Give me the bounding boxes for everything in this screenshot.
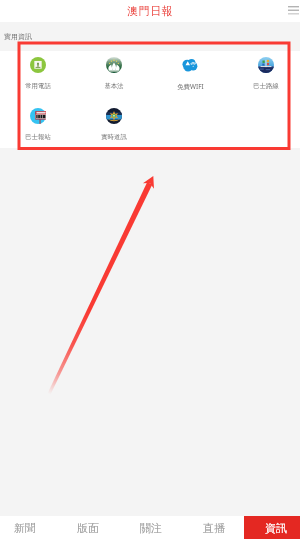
button[interactable]: Menu [284, 4, 299, 18]
button[interactable]: 實時道訊 [76, 103, 152, 147]
staticText: 版面 [77, 521, 99, 535]
button[interactable]: 新聞 [0, 516, 56, 539]
staticText: 新聞 [14, 521, 36, 535]
staticText: 基本法 [104, 82, 124, 90]
staticText: 免費WIFI [177, 82, 204, 91]
button[interactable]: 常用電話 [0, 52, 76, 96]
button[interactable]: 直播 [182, 516, 245, 539]
staticText: 關注 [140, 521, 162, 535]
staticText: 實用資訊 [4, 32, 32, 41]
staticText: 資訊 [265, 521, 287, 535]
button[interactable]: 免費WIFI [152, 52, 228, 96]
staticText: 常用電話 [25, 82, 51, 90]
staticText: 巴士路線 [253, 82, 279, 90]
button[interactable]: 關注 [119, 516, 182, 539]
button[interactable]: 巴士報站 [0, 103, 76, 147]
button[interactable]: 基本法 [76, 52, 152, 96]
staticText: 澳門日報 [127, 4, 174, 18]
staticText: 巴士報站 [25, 133, 51, 141]
staticText: 實時道訊 [101, 133, 127, 141]
button[interactable]: 版面 [56, 516, 119, 539]
button[interactable]: 巴士路線 [228, 52, 300, 96]
button[interactable]: 資訊 [244, 516, 300, 539]
staticText: 直播 [203, 521, 225, 535]
